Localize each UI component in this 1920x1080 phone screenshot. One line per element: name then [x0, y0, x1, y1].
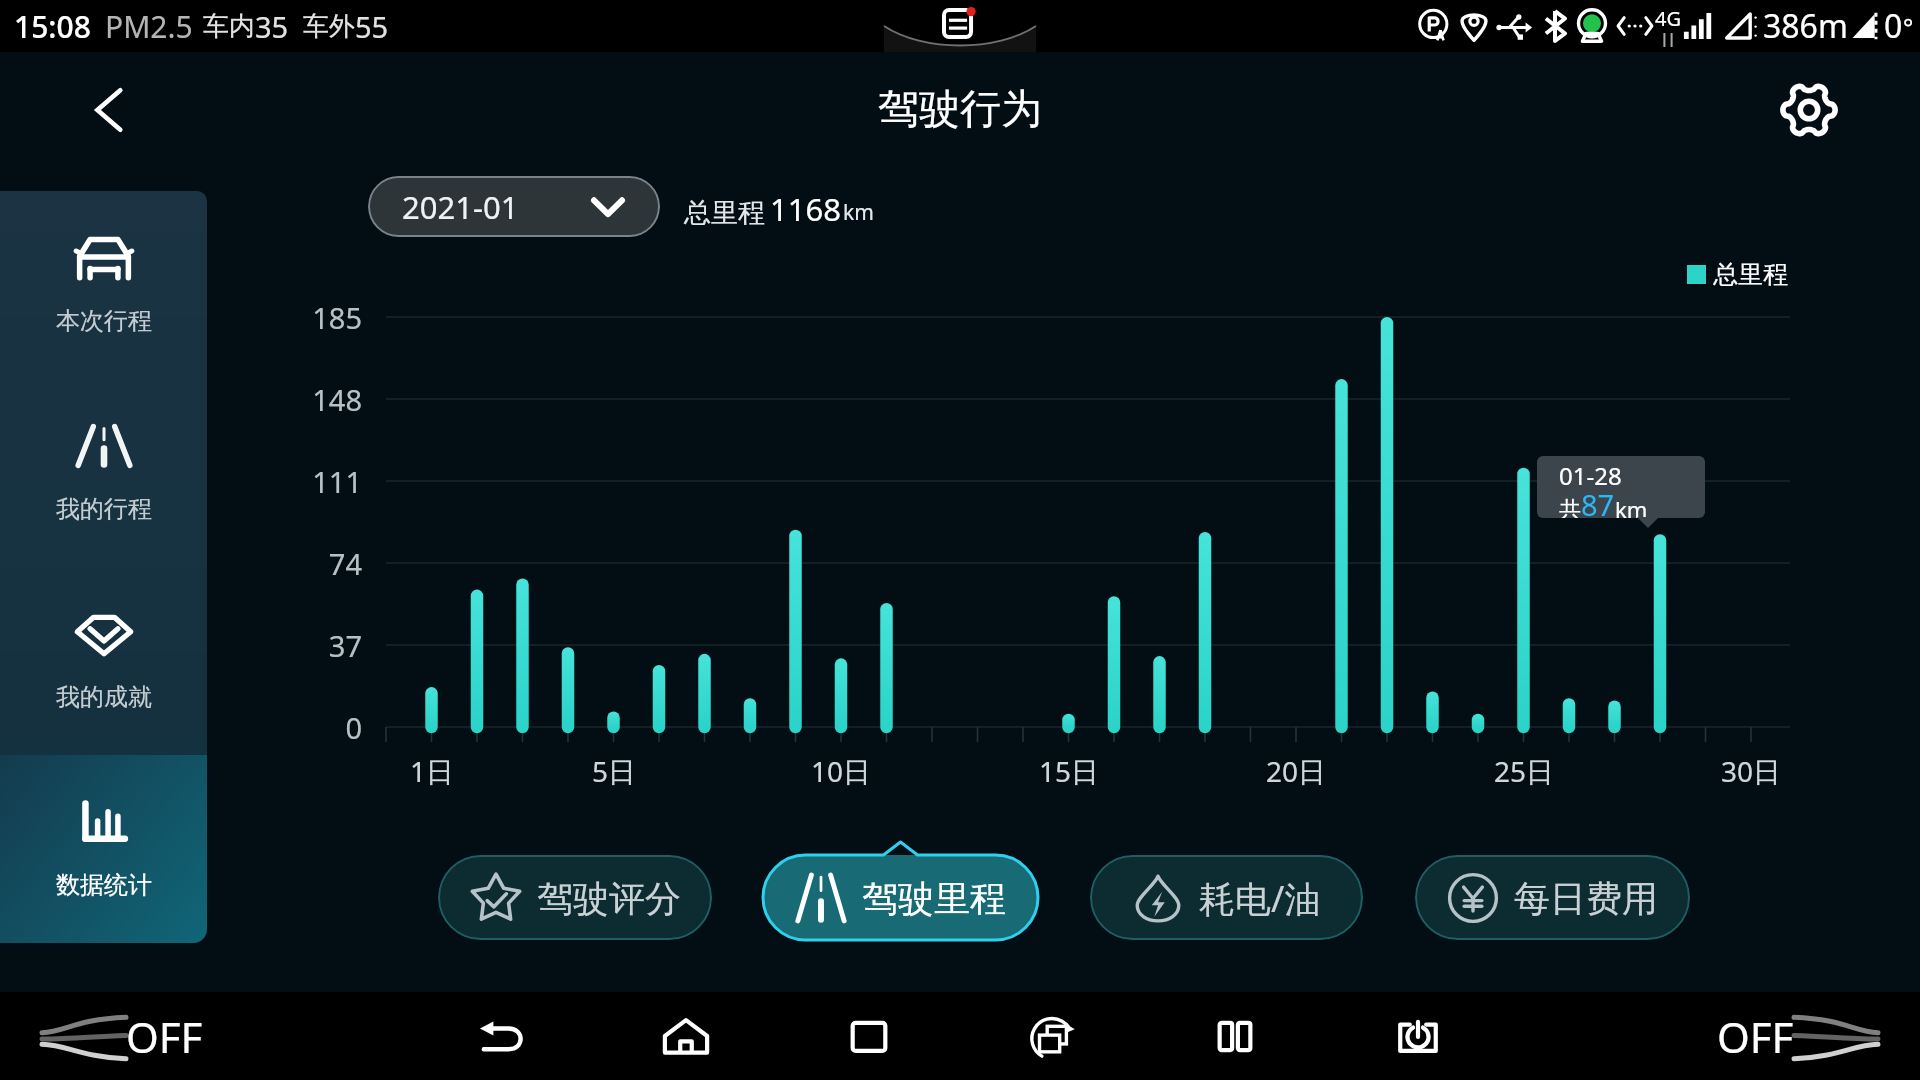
- staticText: 15:08: [14, 6, 91, 47]
- staticText: 每日费用: [1514, 876, 1658, 921]
- staticText: OFF: [126, 1008, 203, 1065]
- button[interactable]: Back: [465, 1000, 541, 1072]
- staticText: 4G: [1655, 5, 1681, 32]
- staticText: 本次行程: [56, 306, 152, 336]
- button[interactable]: Recents: [831, 1000, 907, 1072]
- staticText: 驾驶行为: [878, 84, 1042, 136]
- staticText: km: [1615, 494, 1648, 518]
- button[interactable]: 数据统计: [0, 755, 207, 943]
- staticText: 386m: [1763, 4, 1848, 48]
- staticText: km: [843, 198, 874, 227]
- staticText: 5日: [592, 752, 637, 790]
- staticText: 车外: [303, 10, 355, 43]
- staticText: 10日: [811, 752, 872, 790]
- staticText: 25日: [1494, 752, 1555, 790]
- staticText: 20日: [1266, 752, 1327, 790]
- staticText: 01-28: [1559, 459, 1622, 492]
- staticText: 1168: [770, 188, 841, 230]
- staticText: 我的行程: [56, 494, 152, 524]
- button[interactable]: 驾驶评分: [438, 842, 712, 940]
- staticText: 1日: [410, 752, 455, 790]
- button[interactable]: Split screen: [1197, 1000, 1273, 1072]
- staticText: 车内: [203, 10, 255, 43]
- staticText: 35: [255, 7, 289, 46]
- staticText: 我的成就: [56, 682, 152, 712]
- button[interactable]: 我的成就: [0, 567, 207, 755]
- staticText: 37: [328, 626, 362, 665]
- button[interactable]: Back: [80, 79, 142, 141]
- button[interactable]: 耗电/油: [1090, 842, 1363, 940]
- staticText: 驾驶里程: [862, 876, 1006, 921]
- button[interactable]: 本次行程: [0, 191, 207, 379]
- staticText: 耗电/油: [1199, 874, 1321, 923]
- staticText: 总里程: [1713, 259, 1788, 290]
- staticText: 87: [1581, 485, 1615, 518]
- staticText: 15日: [1039, 752, 1100, 790]
- button[interactable]: Left climate off: [42, 1008, 203, 1065]
- staticText: °: [1903, 10, 1914, 43]
- staticText: 185: [312, 298, 362, 337]
- staticText: 55: [355, 7, 389, 46]
- staticText: 74: [328, 544, 362, 583]
- staticText: 111: [312, 462, 362, 501]
- button[interactable]: Settings: [1780, 81, 1838, 139]
- button[interactable]: 每日费用: [1415, 842, 1690, 940]
- button[interactable]: 我的行程: [0, 379, 207, 567]
- staticText: 0: [1884, 4, 1903, 48]
- staticText: OFF: [1717, 1008, 1794, 1065]
- button[interactable]: Home: [648, 1000, 724, 1072]
- button[interactable]: Apps: [1014, 1000, 1090, 1072]
- button[interactable]: Power: [1380, 1000, 1456, 1072]
- staticText: 驾驶评分: [537, 876, 681, 921]
- staticText: 30日: [1721, 752, 1782, 790]
- staticText: 共: [1559, 496, 1581, 518]
- staticText: 数据统计: [56, 870, 152, 900]
- staticText: 总里程: [684, 196, 765, 230]
- button[interactable]: 驾驶里程: [763, 842, 1038, 940]
- staticText: 0: [345, 708, 362, 747]
- button[interactable]: Right climate off: [1717, 1008, 1878, 1065]
- staticText: 2021-01: [402, 186, 519, 228]
- staticText: PM2.5: [105, 6, 193, 47]
- button[interactable]: 2021-01: [368, 176, 660, 237]
- staticText: 148: [312, 380, 362, 419]
